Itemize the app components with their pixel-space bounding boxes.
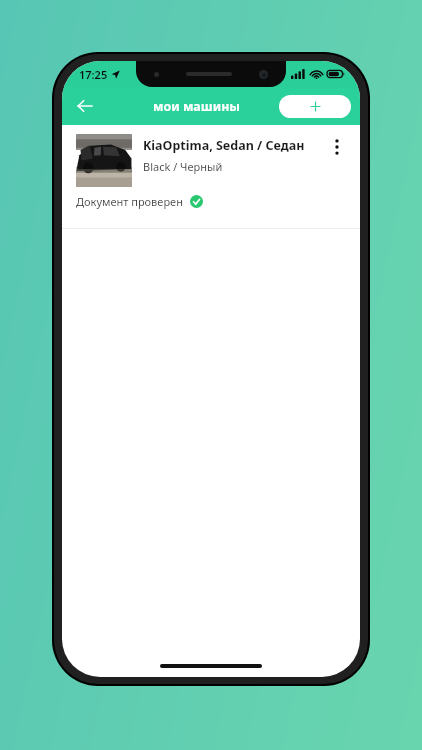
staticText: KiaOptima, Sedan / Седан [143, 137, 305, 154]
staticText: Документ проверен [76, 194, 183, 209]
button[interactable]: Back [68, 89, 102, 123]
staticText: мои машины [153, 98, 241, 115]
button[interactable]: Add car [279, 95, 351, 118]
staticText: Black / Черный [143, 159, 223, 174]
button[interactable]: KiaOptima, Sedan / Седан [62, 125, 360, 209]
button[interactable]: More options [324, 134, 350, 160]
staticText: 17:25 [79, 67, 108, 82]
